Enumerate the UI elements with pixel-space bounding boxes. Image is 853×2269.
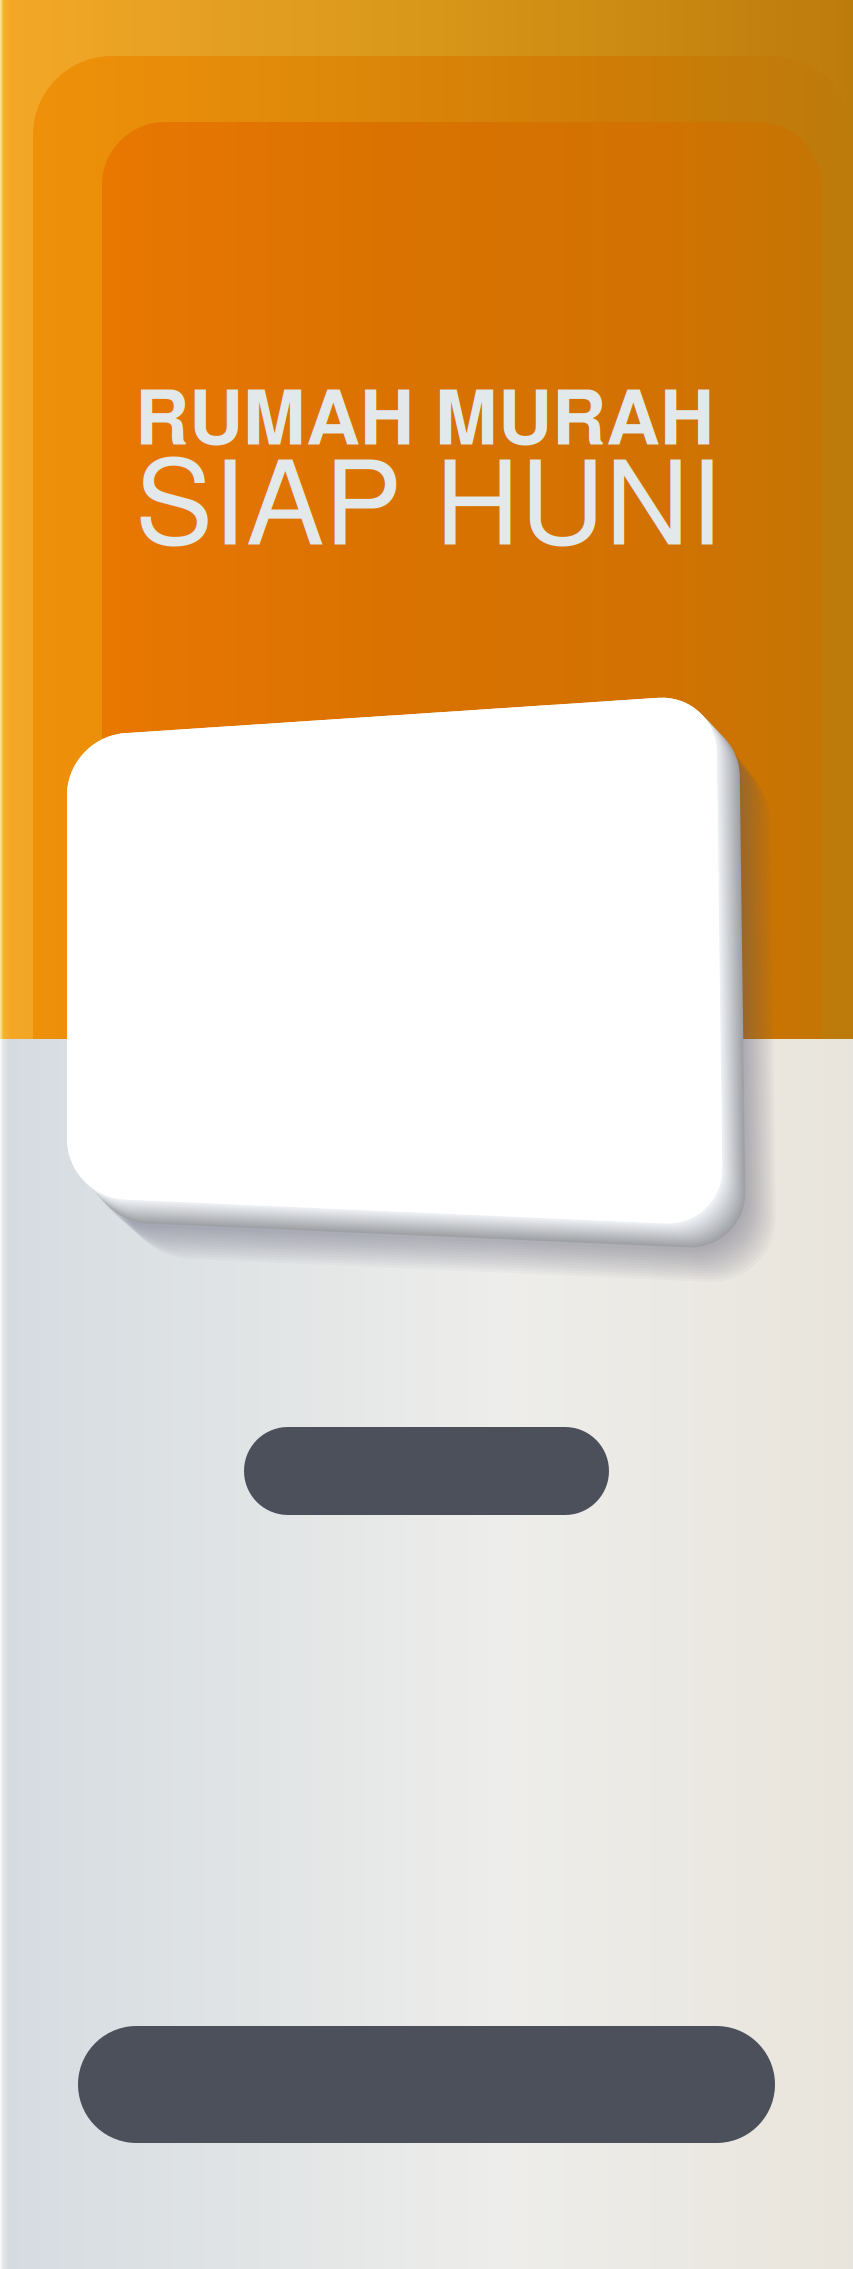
staticText: SIAP HUNI	[135, 410, 723, 578]
staticText: RUMAH MURAH	[135, 360, 714, 467]
